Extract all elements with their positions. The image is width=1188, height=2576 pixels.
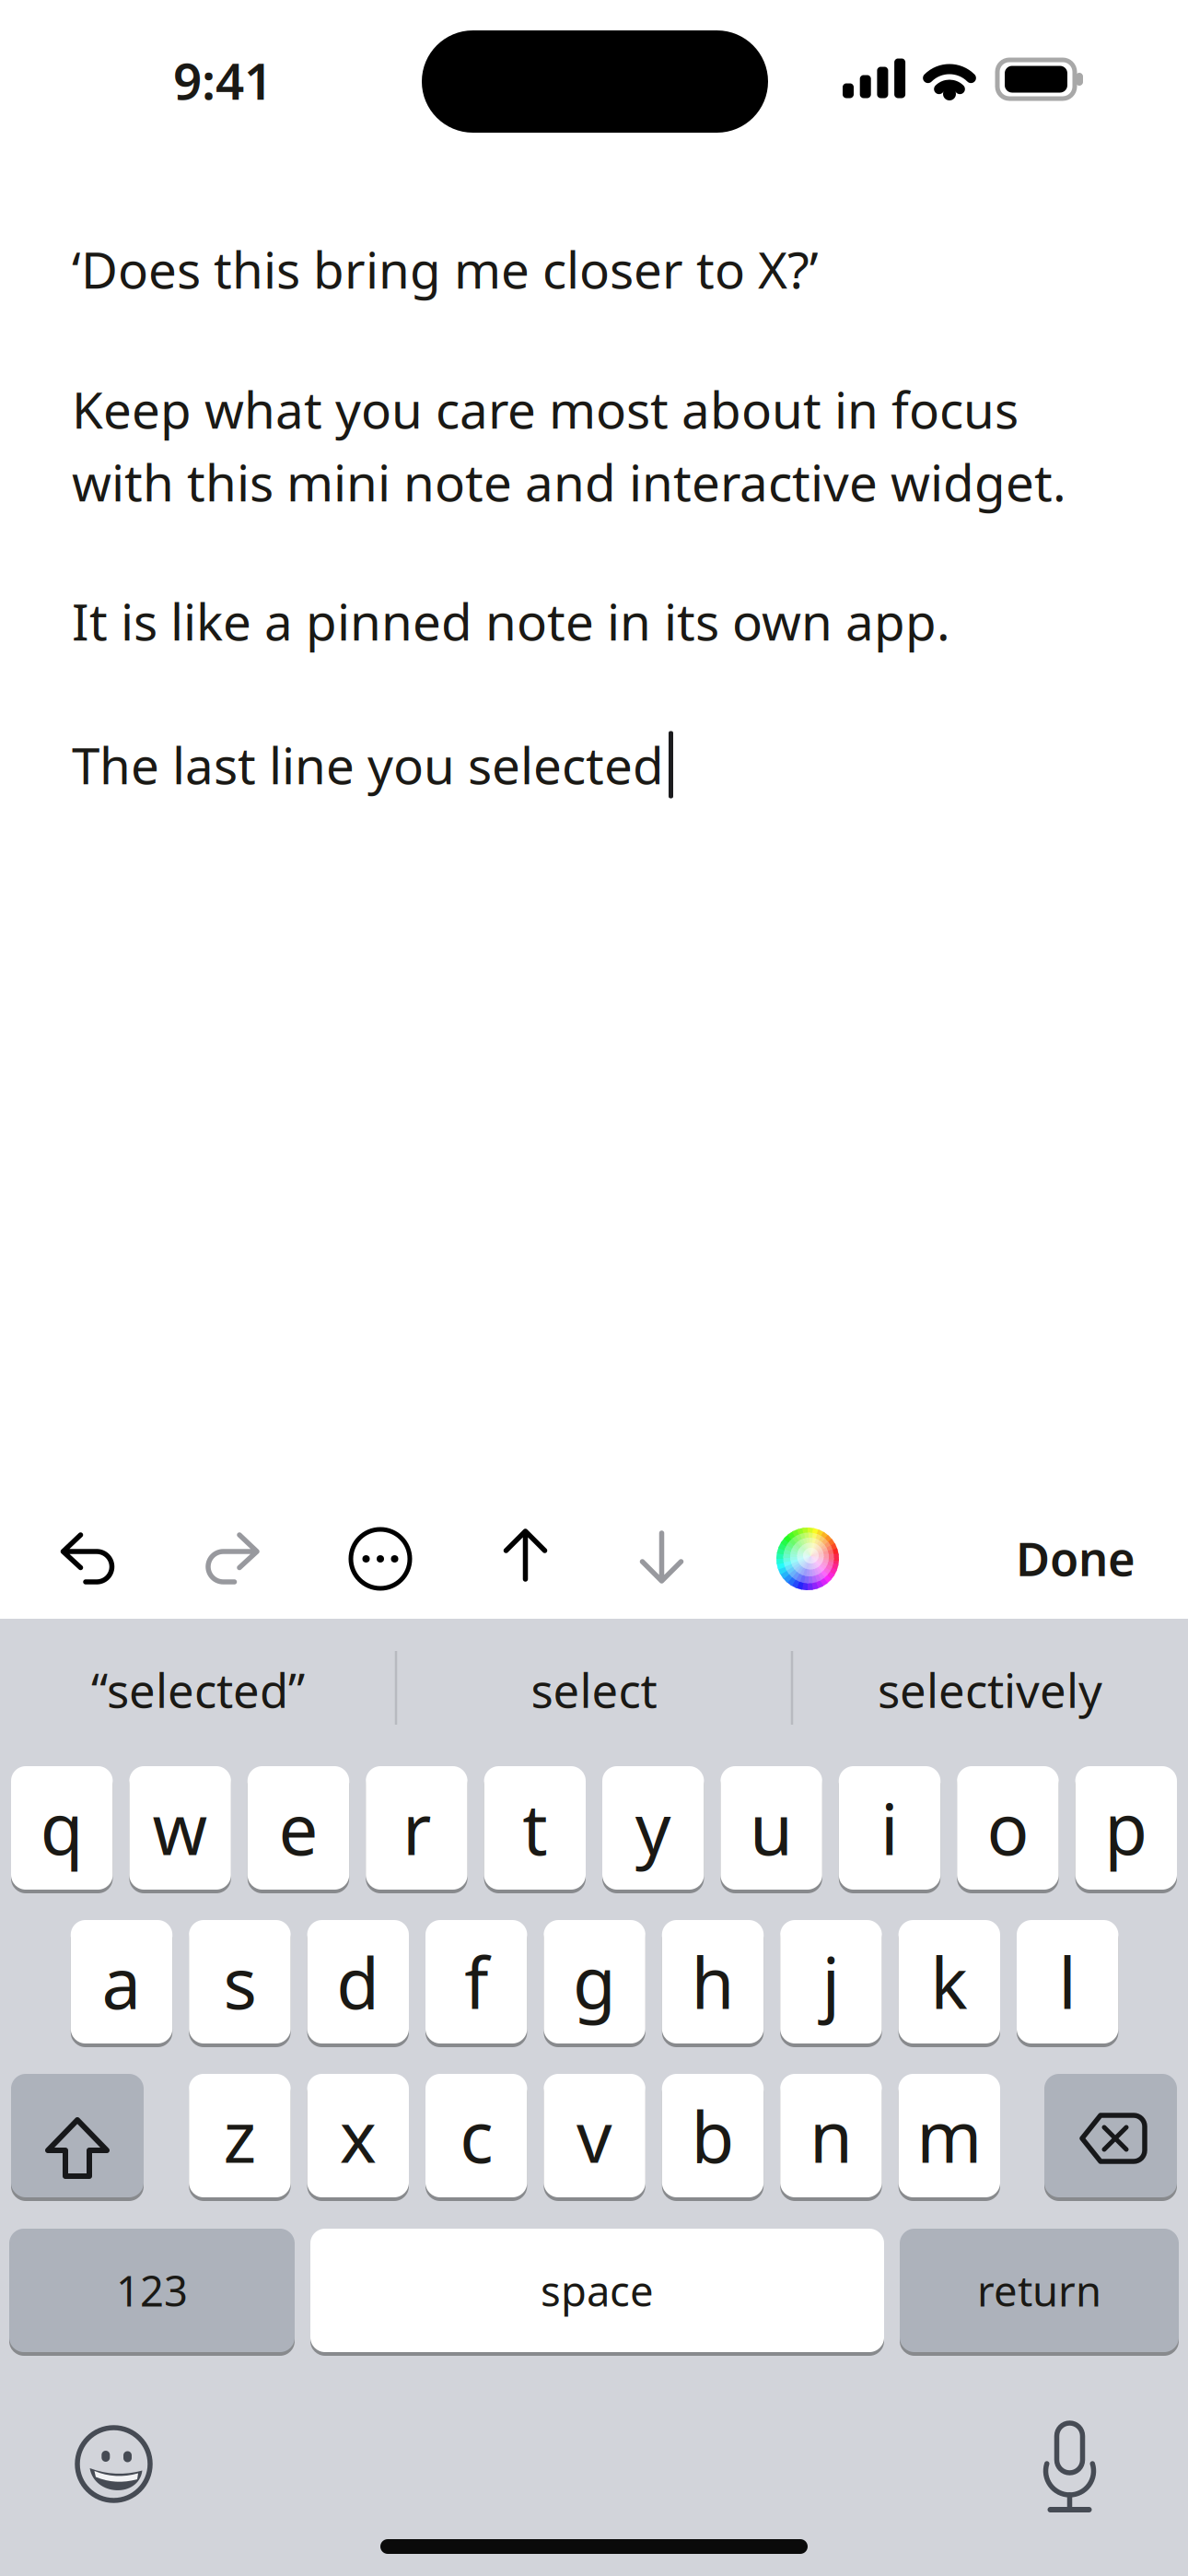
button[interactable]: o bbox=[957, 1766, 1059, 1890]
staticText: f bbox=[464, 1935, 488, 2028]
staticText: “selected” bbox=[91, 1659, 305, 1721]
button[interactable]: select bbox=[399, 1621, 789, 1759]
button[interactable]: t bbox=[484, 1766, 586, 1890]
button[interactable]: Move up bbox=[496, 1527, 555, 1586]
staticText: v bbox=[577, 2089, 613, 2182]
button[interactable]: More bbox=[351, 1529, 410, 1588]
button[interactable]: j bbox=[780, 1920, 882, 2043]
staticText: o bbox=[987, 1781, 1029, 1874]
button[interactable]: Done bbox=[1016, 1527, 1136, 1589]
staticText: d bbox=[336, 1935, 380, 2028]
staticText: q bbox=[40, 1781, 84, 1874]
staticText: y bbox=[635, 1781, 671, 1874]
button[interactable]: “selected” bbox=[3, 1621, 393, 1759]
staticText: a bbox=[102, 1935, 141, 2028]
button[interactable]: Move down bbox=[632, 1528, 691, 1587]
button[interactable]: x bbox=[307, 2074, 409, 2197]
staticText: w bbox=[153, 1781, 208, 1874]
staticText: with this mini note and interactive widg… bbox=[72, 448, 1066, 515]
staticText: t bbox=[522, 1781, 547, 1874]
button[interactable]: y bbox=[602, 1766, 704, 1890]
button[interactable]: k bbox=[898, 1920, 1000, 2043]
button[interactable]: f bbox=[425, 1920, 527, 2043]
staticText: l bbox=[1058, 1935, 1077, 2028]
staticText: The last line you selected bbox=[72, 731, 664, 798]
staticText: selectively bbox=[878, 1659, 1102, 1721]
button[interactable]: Delete bbox=[1044, 2074, 1177, 2197]
staticText: c bbox=[460, 2089, 493, 2182]
button[interactable]: e bbox=[248, 1766, 349, 1890]
button[interactable]: z bbox=[189, 2074, 291, 2197]
staticText: Done bbox=[1016, 1527, 1136, 1589]
staticText: It is like a pinned note in its own app. bbox=[72, 588, 950, 654]
button[interactable]: h bbox=[662, 1920, 764, 2043]
button[interactable]: u bbox=[721, 1766, 822, 1890]
button[interactable]: a bbox=[71, 1920, 172, 2043]
button[interactable]: Color bbox=[775, 1527, 840, 1591]
button[interactable]: b bbox=[662, 2074, 764, 2197]
button[interactable]: p bbox=[1075, 1766, 1177, 1890]
button[interactable]: c bbox=[425, 2074, 527, 2197]
button[interactable]: 123 bbox=[9, 2229, 295, 2352]
staticText: h bbox=[691, 1935, 734, 2028]
button[interactable]: Redo bbox=[203, 1529, 262, 1588]
button[interactable]: q bbox=[11, 1766, 113, 1890]
staticText: j bbox=[822, 1935, 840, 2028]
button[interactable]: return bbox=[900, 2229, 1179, 2352]
staticText: k bbox=[930, 1935, 968, 2028]
staticText: i bbox=[880, 1781, 899, 1874]
button[interactable]: selectively bbox=[795, 1621, 1185, 1759]
staticText: g bbox=[573, 1935, 616, 2028]
button[interactable]: v bbox=[544, 2074, 645, 2197]
button[interactable]: l bbox=[1017, 1920, 1118, 2043]
button[interactable]: space bbox=[310, 2229, 884, 2352]
button[interactable]: n bbox=[780, 2074, 882, 2197]
button[interactable]: Undo bbox=[58, 1529, 117, 1588]
staticText: select bbox=[531, 1659, 657, 1721]
staticText: 9:41 bbox=[173, 47, 273, 114]
staticText: Keep what you care most about in focus bbox=[72, 376, 1019, 443]
button[interactable]: i bbox=[839, 1766, 940, 1890]
staticText: u bbox=[750, 1781, 793, 1874]
staticText: m bbox=[917, 2089, 982, 2182]
button[interactable]: Emoji bbox=[72, 2423, 155, 2506]
staticText: x bbox=[340, 2089, 376, 2182]
button[interactable]: d bbox=[307, 1920, 409, 2043]
staticText: z bbox=[223, 2089, 256, 2182]
staticText: s bbox=[223, 1935, 256, 2028]
button[interactable]: Dictation bbox=[1028, 2422, 1111, 2505]
button[interactable]: g bbox=[544, 1920, 645, 2043]
button[interactable]: r bbox=[366, 1766, 467, 1890]
button[interactable]: s bbox=[189, 1920, 291, 2043]
staticText: b bbox=[691, 2089, 734, 2182]
staticText: p bbox=[1104, 1781, 1148, 1874]
staticText: e bbox=[279, 1781, 318, 1874]
staticText: return bbox=[977, 2263, 1101, 2318]
button[interactable]: m bbox=[898, 2074, 1000, 2197]
staticText: space bbox=[541, 2263, 654, 2318]
staticText: n bbox=[809, 2089, 853, 2182]
button[interactable]: w bbox=[129, 1766, 231, 1890]
staticText: r bbox=[402, 1781, 431, 1874]
button[interactable]: Shift bbox=[11, 2074, 144, 2197]
staticText: 123 bbox=[116, 2263, 188, 2318]
staticText: ‘Does this bring me closer to X?’ bbox=[72, 236, 819, 302]
